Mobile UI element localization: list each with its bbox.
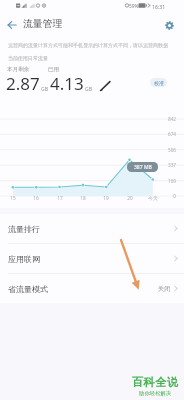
staticText: 关闭 [158, 285, 171, 293]
staticText: 2.87 [6, 72, 40, 95]
button[interactable]: 省流量模式 [0, 274, 184, 303]
staticText: 506 [160, 147, 176, 153]
staticText: 19 [96, 195, 116, 201]
staticText: 16:31 [152, 3, 166, 10]
staticText: 17 [50, 195, 70, 201]
staticText: 今天 [143, 195, 163, 201]
staticText: 流量管理 [23, 18, 63, 30]
staticText: 省流量模式 [8, 284, 48, 294]
staticText: 本月剩余 [7, 66, 30, 73]
button[interactable]: Settings [158, 14, 180, 36]
staticText: 流量排行 [8, 224, 40, 234]
staticText: 16 [26, 195, 46, 201]
staticText: 当前使用日常流量 [8, 55, 48, 61]
staticText: 应用联网 [8, 254, 40, 264]
staticText: 169 [160, 178, 176, 184]
staticText: 已用 [48, 66, 60, 73]
staticText: 助你轻松解决 [139, 390, 172, 397]
staticText: 运营商的流量计算方式可能和手机显示的计算方式不同，请以运营商数据 [8, 42, 168, 48]
staticText: 387 MB [134, 164, 152, 171]
staticText: GB [41, 86, 48, 93]
staticText: 校准 [154, 80, 164, 86]
staticText: 4.13 [50, 72, 84, 95]
button[interactable]: 校准 [150, 78, 167, 87]
staticText: 18 [73, 195, 93, 201]
staticText: 674 [160, 131, 176, 137]
button[interactable]: Back [1, 14, 23, 36]
button[interactable]: 流量排行 [0, 214, 184, 243]
staticText: 59% [129, 3, 139, 10]
staticText: 842 [160, 116, 176, 122]
staticText: 337 [160, 162, 176, 168]
staticText: 20 [120, 195, 140, 201]
staticText: 百科全说 [132, 375, 179, 389]
button[interactable]: 应用联网 [0, 244, 184, 273]
staticText: 0 [160, 193, 176, 199]
staticText: GB [85, 86, 92, 93]
staticText: 15 [3, 195, 23, 201]
button[interactable]: Edit data plan [99, 79, 113, 93]
